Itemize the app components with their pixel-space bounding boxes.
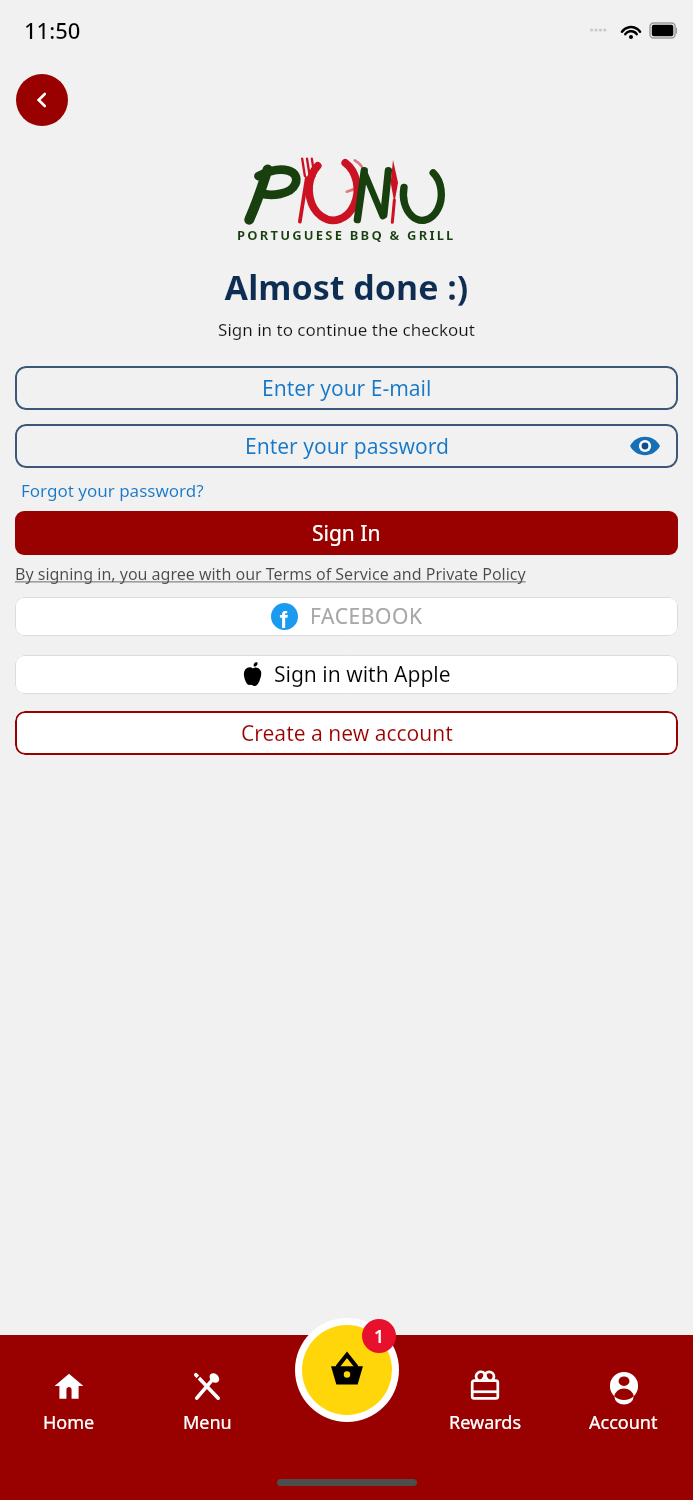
button[interactable]: Enter your E-mail: [15, 366, 678, 410]
staticText: Sign in to continue the checkout: [0, 318, 693, 341]
button[interactable]: By signing in, you agree with our Terms …: [15, 563, 526, 585]
staticText: Rewards: [449, 1410, 521, 1435]
staticText: Almost done :): [0, 264, 693, 310]
button[interactable]: Rewards: [415, 1335, 554, 1455]
button[interactable]: Forgot your password?: [19, 477, 206, 504]
staticText: Home: [43, 1410, 95, 1435]
staticText: Sign In: [312, 519, 381, 548]
button[interactable]: Account: [554, 1335, 693, 1455]
button[interactable]: Create a new account: [15, 711, 678, 755]
staticText: 1: [374, 1324, 385, 1349]
button[interactable]: Sign in with Apple: [15, 655, 678, 694]
button[interactable]: Back: [16, 74, 68, 126]
staticText: Forgot your password?: [21, 479, 204, 502]
staticText: Create a new account: [241, 719, 453, 748]
button[interactable]: Sign In: [15, 511, 678, 555]
button[interactable]: Cart: [292, 1315, 402, 1425]
staticText: FACEBOOK: [310, 602, 423, 631]
staticText: By signing in, you agree with our Terms …: [15, 563, 526, 585]
staticText: Account: [589, 1410, 658, 1435]
staticText: Menu: [183, 1410, 232, 1435]
staticText: 11:50: [24, 15, 81, 45]
button[interactable]: Show password: [628, 429, 662, 463]
staticText: Enter your password: [245, 432, 449, 461]
button[interactable]: FACEBOOK: [15, 597, 678, 636]
staticText: Enter your E-mail: [262, 374, 432, 403]
button[interactable]: Menu: [138, 1335, 276, 1455]
staticText: Sign in with Apple: [274, 660, 451, 689]
button[interactable]: Home: [0, 1335, 138, 1455]
staticText: PORTUGUESE BBQ & GRILL: [237, 226, 456, 244]
button[interactable]: Enter your password: [15, 424, 678, 468]
